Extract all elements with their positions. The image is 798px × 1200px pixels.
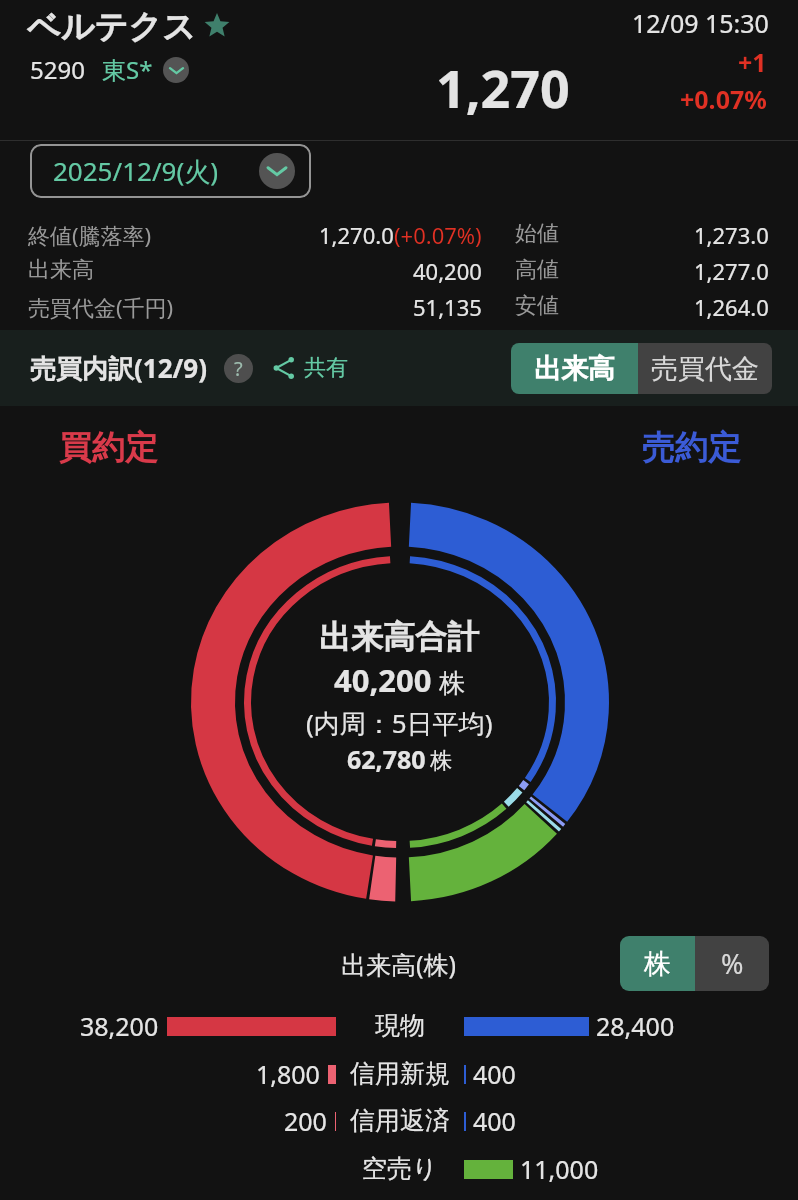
button[interactable]: 出来高: [511, 343, 638, 394]
staticText: 12/09 15:30: [632, 6, 769, 40]
staticText: 株: [644, 947, 671, 981]
staticText: 400: [473, 1104, 516, 1138]
staticText: ?: [234, 355, 243, 382]
staticText: (内周：5日平均): [306, 705, 493, 741]
staticText: %: [721, 945, 744, 982]
staticText: 200: [284, 1104, 327, 1138]
staticText: 株: [430, 747, 452, 775]
staticText: 信用返済: [350, 1105, 450, 1136]
button[interactable]: 2025/12/9(火): [30, 144, 311, 198]
staticText: 400: [473, 1057, 516, 1091]
staticText: 空売り: [362, 1153, 438, 1184]
staticText: 62,780: [347, 742, 426, 776]
staticText: 2025/12/9(火): [53, 153, 219, 189]
staticText: 信用新規: [350, 1058, 450, 1089]
staticText: 売買代金(千円): [28, 292, 174, 320]
staticText: 出来高合計: [319, 617, 479, 657]
staticText: 出来高(株): [341, 947, 457, 981]
staticText: 5290: [30, 53, 85, 86]
staticText: 終値(騰落率): [28, 220, 152, 248]
staticText: 出来高: [534, 352, 615, 386]
staticText: 1,270: [436, 52, 570, 123]
staticText: 出来高: [28, 256, 94, 284]
staticText: 1,277.0: [694, 256, 769, 284]
staticText: +1: [738, 45, 767, 79]
staticText: 28,400: [596, 1009, 675, 1043]
staticText: 高値: [515, 256, 559, 284]
staticText: 売約定: [642, 427, 741, 469]
staticText: 安値: [515, 292, 559, 320]
staticText: 40,200: [334, 659, 432, 701]
staticText: 売買代金: [651, 352, 759, 386]
staticText: 40,200: [413, 256, 482, 284]
staticText: 38,200: [80, 1009, 159, 1043]
staticText: (+0.07%): [394, 220, 482, 248]
staticText: 東S*: [102, 53, 153, 86]
button[interactable]: 共有: [270, 348, 350, 388]
staticText: 買約定: [59, 427, 158, 469]
button[interactable]: Help: [224, 354, 253, 383]
staticText: 1,273.0: [694, 220, 769, 248]
staticText: 1,264.0: [694, 292, 769, 320]
staticText: 1,270.0: [319, 220, 394, 248]
staticText: ベルテクス: [27, 6, 196, 48]
staticText: 始値: [515, 220, 559, 248]
staticText: 1,800: [256, 1057, 320, 1091]
staticText: 現物: [375, 1010, 425, 1041]
staticText: 51,135: [413, 292, 482, 320]
staticText: 売買内訳(12/9): [30, 350, 208, 386]
button[interactable]: %: [695, 936, 769, 991]
button[interactable]: Market info: [163, 57, 189, 83]
button[interactable]: 株: [620, 936, 695, 991]
staticText: 株: [439, 667, 465, 700]
staticText: 共有: [304, 354, 348, 382]
staticText: +0.07%: [680, 82, 767, 116]
staticText: 11,000: [520, 1152, 599, 1186]
button[interactable]: 売買代金: [638, 343, 772, 394]
